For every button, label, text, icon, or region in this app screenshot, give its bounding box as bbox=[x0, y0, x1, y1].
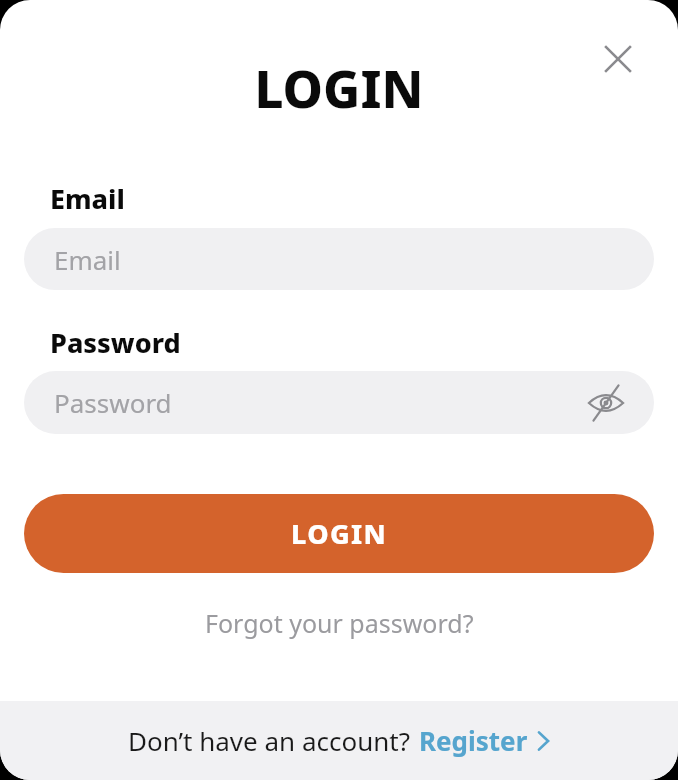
staticText: LOGIN bbox=[0, 53, 678, 122]
button[interactable]: Close bbox=[592, 33, 644, 85]
button[interactable]: Show password bbox=[583, 380, 629, 426]
staticText: Password bbox=[50, 324, 181, 361]
staticText: Don’t have an account? bbox=[128, 723, 410, 758]
staticText: Email bbox=[50, 180, 125, 217]
button[interactable]: Password bbox=[24, 371, 654, 434]
staticText: Email bbox=[54, 242, 121, 277]
staticText: LOGIN bbox=[291, 515, 387, 552]
button[interactable]: LOGIN bbox=[24, 494, 654, 573]
button[interactable]: Don’t have an account? bbox=[118, 715, 560, 766]
staticText: Register bbox=[419, 723, 528, 758]
staticText: Forgot your password? bbox=[205, 606, 474, 640]
button[interactable]: Email bbox=[24, 228, 654, 290]
staticText: Password bbox=[54, 385, 172, 420]
button[interactable]: Forgot your password? bbox=[0, 600, 678, 646]
